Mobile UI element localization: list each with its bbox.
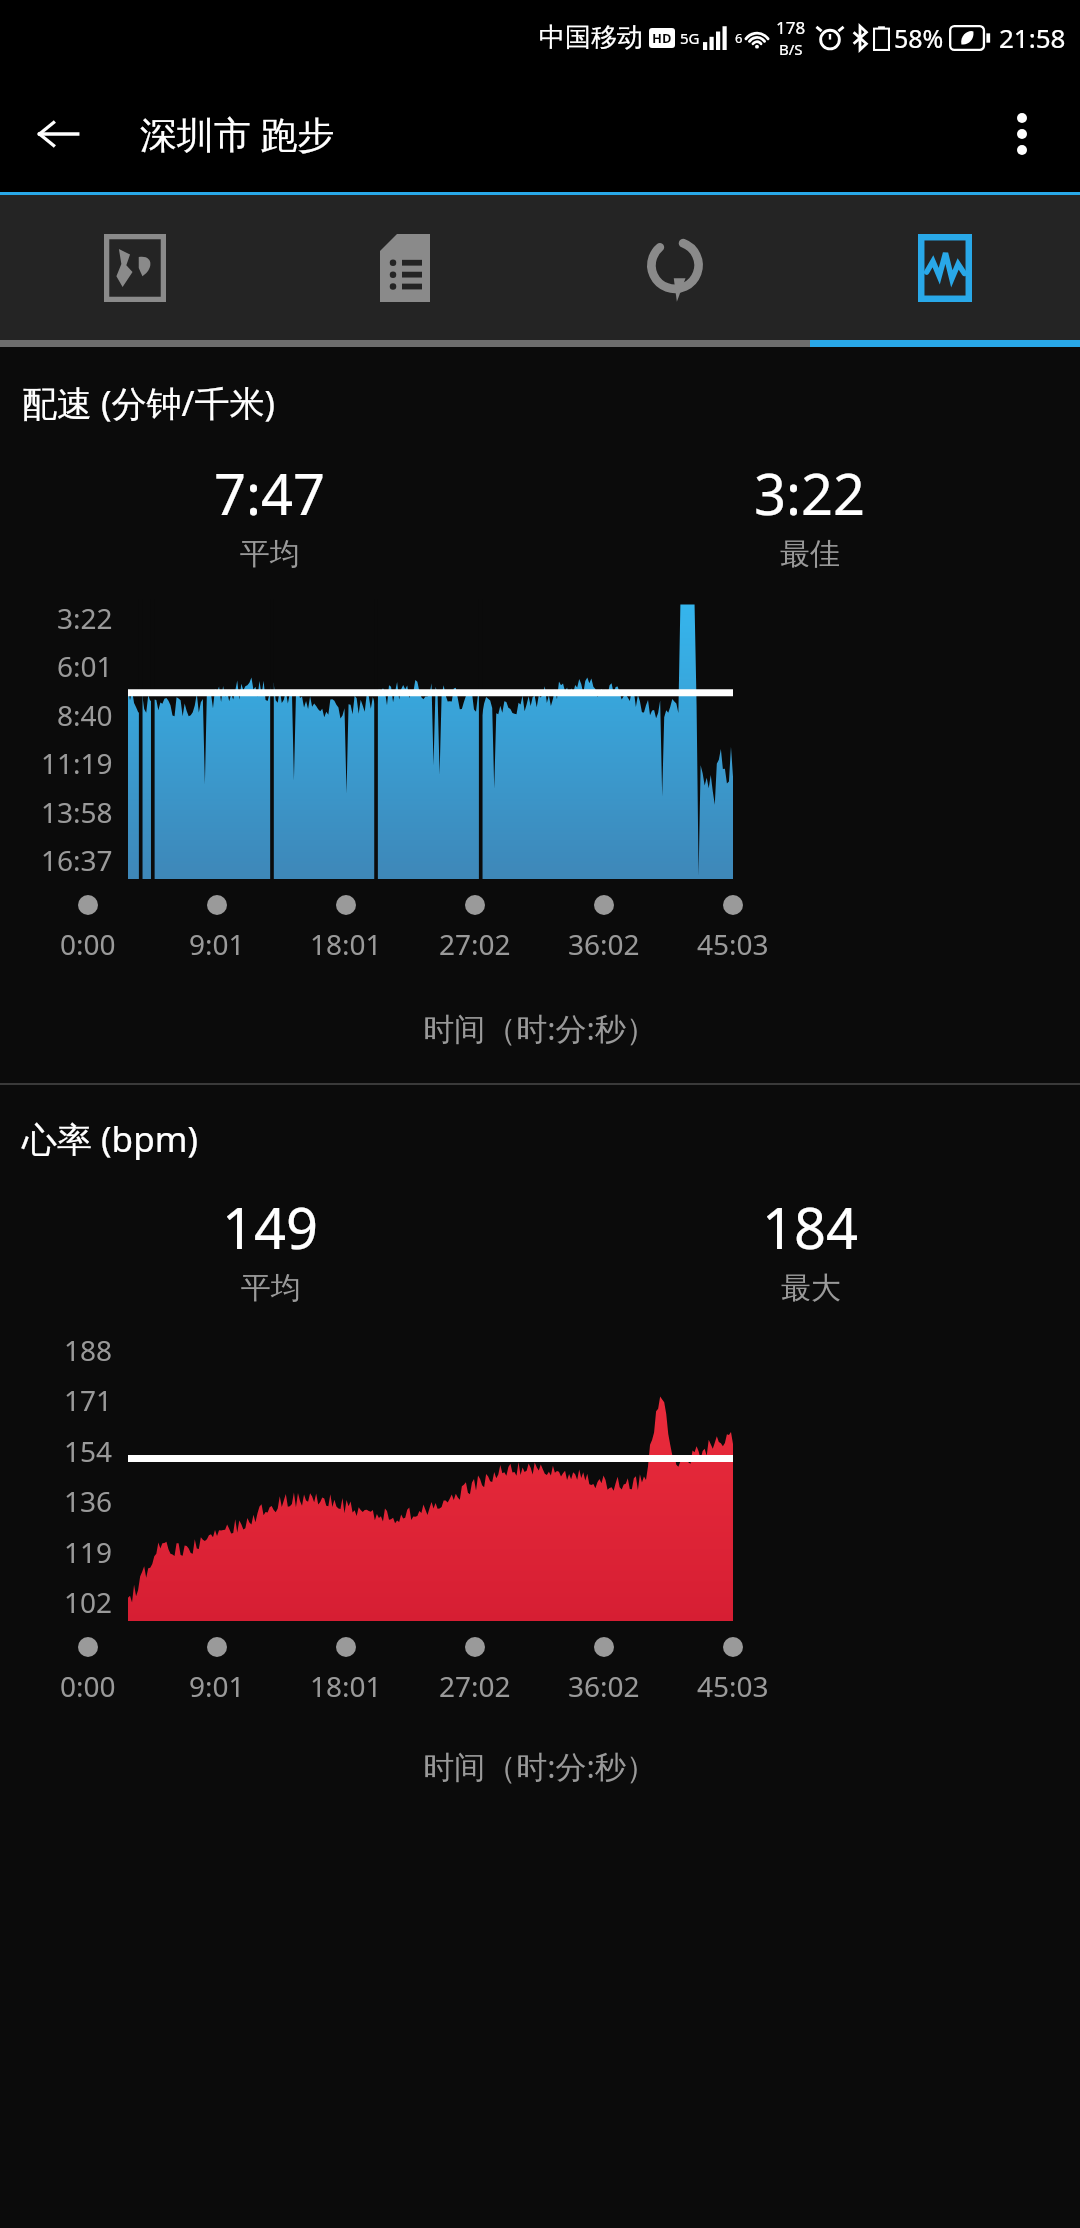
staticText: 154 [64, 1432, 113, 1470]
staticText: 178 [776, 16, 806, 39]
staticText: 27:02 [439, 1667, 511, 1705]
staticText: 13:58 [41, 793, 113, 831]
staticText: 6 [735, 29, 743, 47]
staticText: 平均 [240, 535, 300, 573]
staticText: 9:01 [189, 1667, 245, 1705]
staticText: 16:37 [41, 841, 113, 879]
staticText: 时间（时:分:秒） [0, 1007, 1080, 1049]
staticText: 3:22 [57, 599, 113, 637]
staticText: 18:01 [310, 925, 382, 963]
staticText: 配速 (分钟/千米) [22, 379, 276, 427]
staticText: 27:02 [439, 925, 511, 963]
staticText: 119 [64, 1533, 113, 1571]
staticText: 最大 [781, 1269, 841, 1307]
button[interactable]: Charts [810, 195, 1080, 340]
staticText: 136 [64, 1482, 113, 1520]
staticText: HD [652, 29, 672, 47]
button[interactable]: Laps [540, 195, 810, 340]
staticText: 0:00 [60, 925, 116, 963]
staticText: 11:19 [41, 744, 113, 782]
staticText: 最佳 [780, 535, 840, 573]
staticText: 0:00 [60, 1667, 116, 1705]
staticText: 9:01 [189, 925, 245, 963]
staticText: B/S [779, 39, 803, 59]
staticText: 深圳市 跑步 [140, 108, 335, 159]
staticText: 心率 (bpm) [22, 1115, 198, 1163]
staticText: 58% [894, 21, 944, 55]
staticText: 8:40 [57, 696, 113, 734]
staticText: 36:02 [568, 925, 640, 963]
button[interactable]: Details [270, 195, 540, 340]
staticText: 188 [64, 1331, 113, 1369]
staticText: 3:22 [754, 455, 866, 531]
staticText: 18:01 [310, 1667, 382, 1705]
button[interactable]: Map [0, 195, 270, 340]
staticText: 171 [64, 1381, 113, 1419]
staticText: 102 [64, 1583, 113, 1621]
staticText: 21:58 [999, 20, 1066, 55]
staticText: 时间（时:分:秒） [0, 1745, 1080, 1787]
button[interactable]: More options [982, 94, 1062, 174]
staticText: 6:01 [57, 647, 113, 685]
staticText: 7:47 [214, 455, 326, 531]
staticText: 中国移动 [539, 21, 643, 54]
staticText: 36:02 [568, 1667, 640, 1705]
staticText: 149 [222, 1189, 319, 1265]
staticText: 45:03 [697, 1667, 769, 1705]
staticText: 平均 [241, 1269, 301, 1307]
staticText: 5G [680, 28, 700, 48]
button[interactable]: Back [18, 94, 98, 174]
staticText: 45:03 [697, 925, 769, 963]
staticText: 184 [762, 1189, 859, 1265]
